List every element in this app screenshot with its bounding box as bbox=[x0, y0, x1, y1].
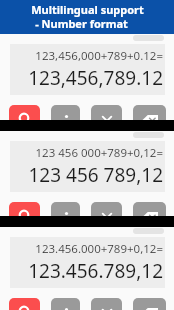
staticText: 123.456.789,12 bbox=[28, 258, 163, 284]
button[interactable]: Multiply bbox=[91, 298, 122, 310]
staticText: 123,456,789.12 bbox=[28, 65, 163, 91]
button[interactable]: Multiply bbox=[91, 202, 122, 232]
button[interactable]: Decimal point bbox=[51, 298, 80, 310]
button[interactable]: Decimal point bbox=[51, 202, 80, 232]
button[interactable]: Clear bbox=[9, 202, 40, 232]
staticText: - Number format bbox=[35, 16, 128, 31]
button[interactable]: Clear bbox=[9, 298, 40, 310]
staticText: 123.456.000+789+0,12= bbox=[35, 241, 163, 257]
staticText: 123 456 789,12 bbox=[28, 162, 163, 188]
button[interactable]: Backspace bbox=[133, 202, 166, 232]
staticText: 123,456,000+789+0.12= bbox=[35, 48, 163, 64]
button[interactable]: Backspace bbox=[133, 105, 166, 135]
button[interactable]: Multiply bbox=[91, 105, 122, 135]
staticText: Multilingual support bbox=[31, 2, 144, 17]
button[interactable]: Backspace bbox=[133, 298, 166, 310]
staticText: 123 456 000+789+0,12= bbox=[35, 145, 163, 161]
button[interactable]: Decimal point bbox=[51, 105, 80, 135]
button[interactable]: Clear bbox=[9, 105, 40, 135]
